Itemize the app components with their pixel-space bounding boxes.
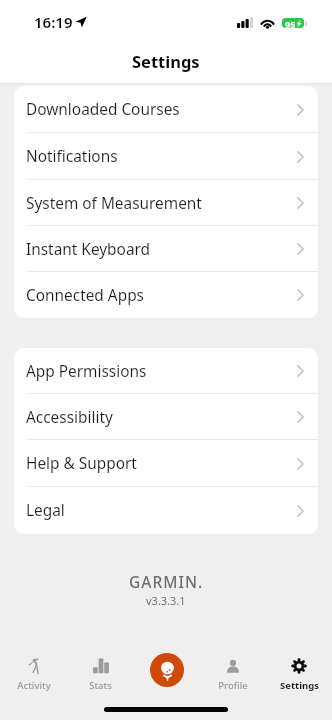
staticText: Notifications: [26, 146, 118, 167]
staticText: Profile: [218, 679, 248, 692]
button[interactable]: Settings: [266, 653, 332, 698]
button[interactable]: Legal: [14, 487, 318, 534]
button[interactable]: Downloaded Courses: [14, 86, 318, 133]
staticText: 16:19: [34, 12, 73, 32]
staticText: Help & Support: [26, 453, 137, 474]
staticText: v3.3.3.1: [146, 593, 186, 608]
staticText: Downloaded Courses: [26, 99, 180, 120]
staticText: Instant Keyboard: [26, 239, 151, 260]
staticText: 95: [285, 18, 296, 28]
button[interactable]: Start round: [150, 653, 184, 687]
staticText: App Permissions: [26, 361, 147, 382]
button[interactable]: App Permissions: [14, 348, 318, 394]
staticText: Accessibility: [26, 407, 113, 428]
button[interactable]: Connected Apps: [14, 272, 318, 318]
button[interactable]: Accessibility: [14, 394, 318, 440]
button[interactable]: Profile: [200, 653, 266, 698]
button[interactable]: Stats: [67, 653, 134, 698]
staticText: Connected Apps: [26, 285, 144, 306]
staticText: System of Measurement: [26, 193, 202, 214]
button[interactable]: Help & Support: [14, 440, 318, 487]
button[interactable]: Activity: [0, 653, 67, 698]
staticText: Settings: [132, 50, 200, 72]
staticText: Stats: [89, 679, 112, 692]
button[interactable]: Instant Keyboard: [14, 226, 318, 272]
staticText: Activity: [17, 679, 51, 692]
staticText: Settings: [280, 679, 319, 692]
staticText: GARMIN.: [129, 571, 204, 592]
staticText: Legal: [26, 500, 65, 521]
button[interactable]: Notifications: [14, 133, 318, 180]
button[interactable]: System of Measurement: [14, 180, 318, 226]
